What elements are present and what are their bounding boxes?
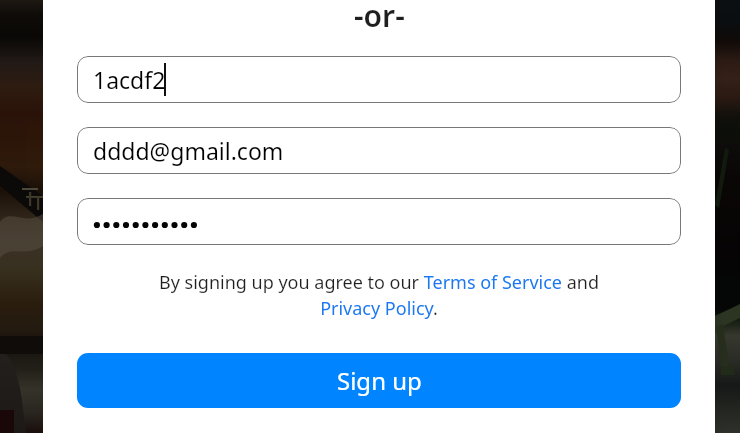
staticText: -or- xyxy=(354,0,405,36)
button[interactable]: 1acdf2 xyxy=(77,56,681,103)
button[interactable] xyxy=(77,198,681,245)
staticText: By signing up you agree to our Terms of … xyxy=(149,270,609,321)
staticText: dddd@gmail.com xyxy=(93,135,284,166)
button[interactable]: Sign up xyxy=(77,353,681,408)
staticText: Sign up xyxy=(337,364,422,397)
button[interactable]: dddd@gmail.com xyxy=(77,127,681,174)
button[interactable]: Privacy Policy xyxy=(322,300,434,322)
button[interactable]: Terms of Service xyxy=(424,273,561,295)
staticText: 1acdf2 xyxy=(93,64,166,95)
